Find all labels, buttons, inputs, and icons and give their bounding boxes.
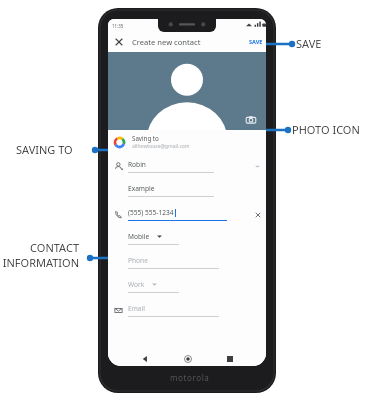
- button[interactable]: (555) 555-1234: [108, 202, 266, 226]
- staticText: INFORMATION: [2, 255, 79, 270]
- button[interactable]: Email: [108, 298, 266, 322]
- button[interactable]: Phone: [108, 250, 266, 274]
- staticText: Create new contact: [132, 37, 201, 47]
- staticText: motorola: [170, 372, 210, 383]
- staticText: Mobile: [128, 232, 150, 241]
- staticText: PHOTO ICON: [292, 122, 360, 137]
- staticText: 11:35: [112, 23, 124, 29]
- button[interactable]: Close: [112, 35, 126, 49]
- staticText: CONTACT: [30, 240, 79, 255]
- button[interactable]: Clear: [253, 210, 263, 220]
- staticText: (555) 555-1234: [128, 208, 174, 217]
- button[interactable]: Saving to: [108, 130, 266, 154]
- button[interactable]: Example: [108, 178, 266, 202]
- button[interactable]: SAVE: [249, 38, 263, 46]
- button[interactable]: Recents: [224, 353, 235, 364]
- button[interactable]: Back: [139, 353, 150, 364]
- button[interactable]: Work: [108, 274, 266, 298]
- button[interactable]: Robin: [108, 154, 266, 178]
- staticText: Robin: [128, 160, 146, 169]
- staticText: Saving to: [132, 134, 159, 142]
- button[interactable]: Home: [182, 353, 193, 364]
- staticText: Work: [128, 280, 145, 289]
- staticText: SAVING TO: [16, 142, 92, 157]
- staticText: Email: [128, 304, 145, 313]
- staticText: SAVE: [249, 38, 263, 46]
- staticText: Example: [128, 184, 155, 193]
- staticText: Phone: [128, 256, 148, 265]
- staticText: allhowtouse@gmail.com: [132, 143, 190, 150]
- button[interactable]: Mobile: [108, 226, 266, 250]
- staticText: SAVE: [296, 36, 322, 51]
- button[interactable]: Add photo: [245, 114, 257, 126]
